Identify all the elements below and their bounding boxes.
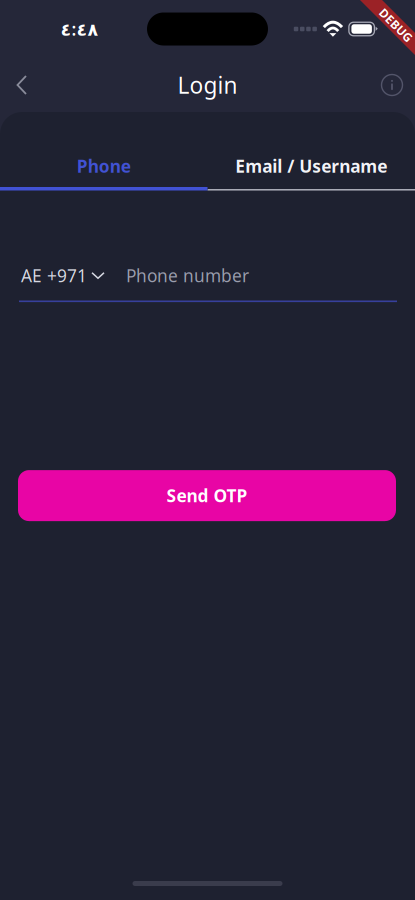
staticText: AE +971: [21, 264, 87, 287]
button[interactable]: AE +971: [21, 262, 105, 288]
staticText: Send OTP: [166, 484, 247, 507]
button[interactable]: Phone: [0, 112, 207, 187]
button[interactable]: Send OTP: [18, 470, 396, 521]
staticText: DEBUG: [376, 15, 415, 31]
staticText: Phone number: [126, 264, 249, 287]
staticText: Login: [177, 70, 237, 100]
staticText: Phone: [77, 154, 131, 177]
button[interactable]: Information: [368, 61, 415, 109]
button[interactable]: Email / Username: [207, 112, 415, 187]
button[interactable]: Back: [0, 61, 46, 109]
staticText: ٤:٤٨: [60, 17, 98, 40]
staticText: Email / Username: [235, 154, 387, 177]
